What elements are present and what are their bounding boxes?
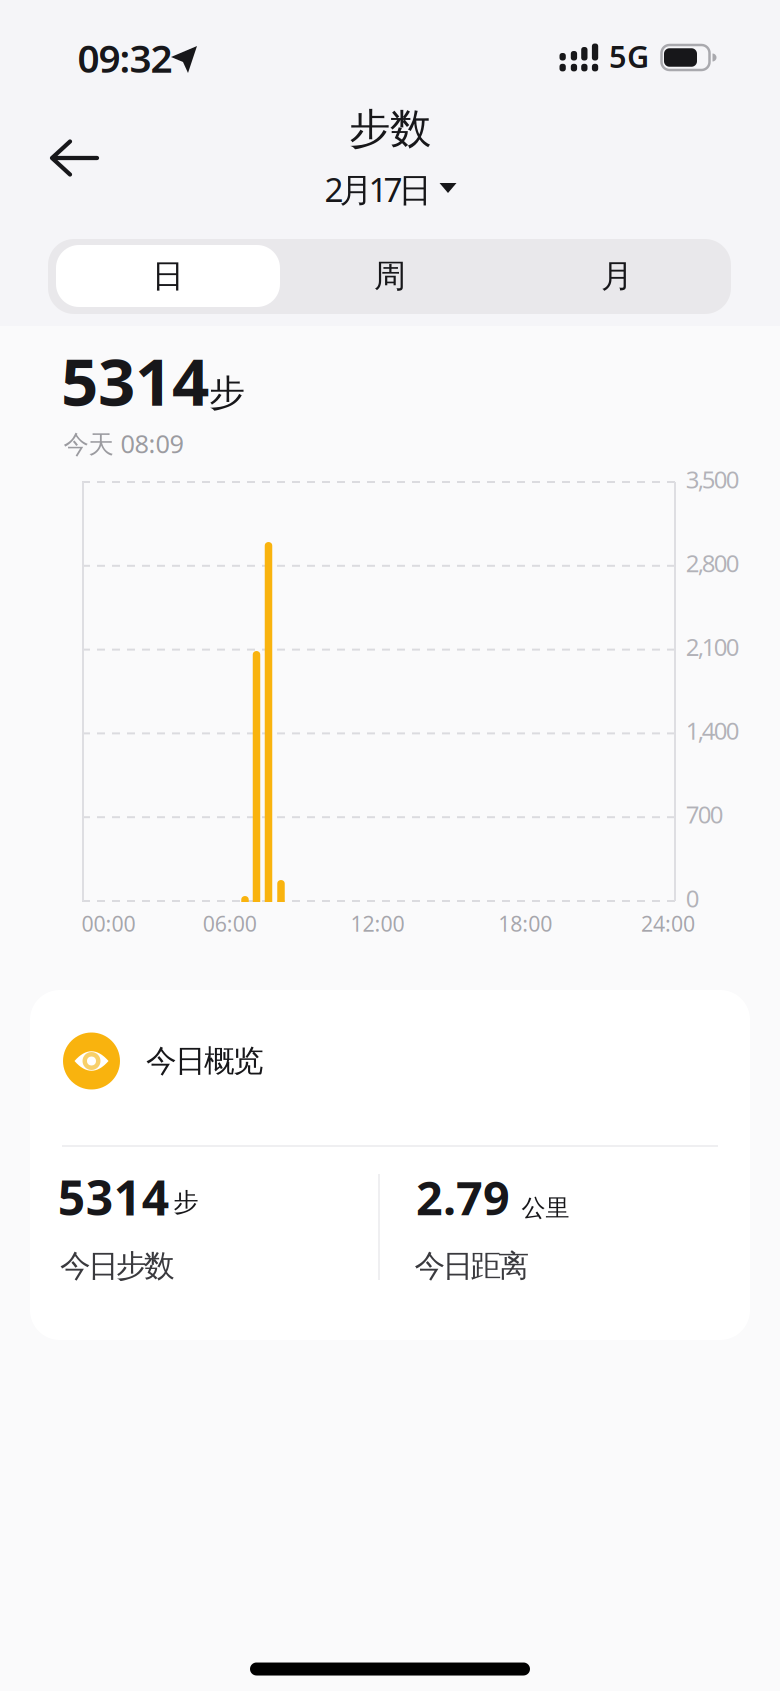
button[interactable]: Back [0,0,780,1691]
staticText: 2.79 [416,1166,510,1228]
staticText: 步数 [349,104,431,154]
button[interactable]: 月 [0,0,780,1691]
staticText: 2月17日 [324,167,431,211]
staticText: 06:00 [203,909,257,938]
staticText: 00:00 [81,909,135,938]
staticText: 09:32 [77,32,172,83]
staticText: 今日步数 [60,1247,175,1285]
staticText: 12:00 [350,909,404,938]
staticText: 2,100 [686,631,740,663]
staticText: 今日距离 [415,1247,530,1285]
staticText: 今日概览 [146,1042,264,1080]
staticText: 5314 [61,337,209,424]
button[interactable]: Select date [0,0,780,1691]
staticText: 周 [374,256,406,296]
staticText: 5314 [58,1165,169,1229]
staticText: 5G [609,36,649,76]
staticText: 3,500 [686,463,740,495]
staticText: 700 [686,798,724,830]
staticText: 今天 08:09 [63,427,183,460]
staticText: 公里 [522,1193,570,1223]
button[interactable]: 日 [0,0,780,1691]
button[interactable]: 周 [0,0,780,1691]
staticText: 月 [601,256,633,296]
staticText: 1,400 [686,715,740,746]
staticText: 日 [152,256,184,296]
staticText: 步 [173,1187,198,1218]
staticText: 24:00 [641,909,695,938]
staticText: 2,800 [686,547,740,579]
staticText: 0 [686,882,700,914]
staticText: 18:00 [498,909,552,938]
staticText: 步 [209,371,245,415]
